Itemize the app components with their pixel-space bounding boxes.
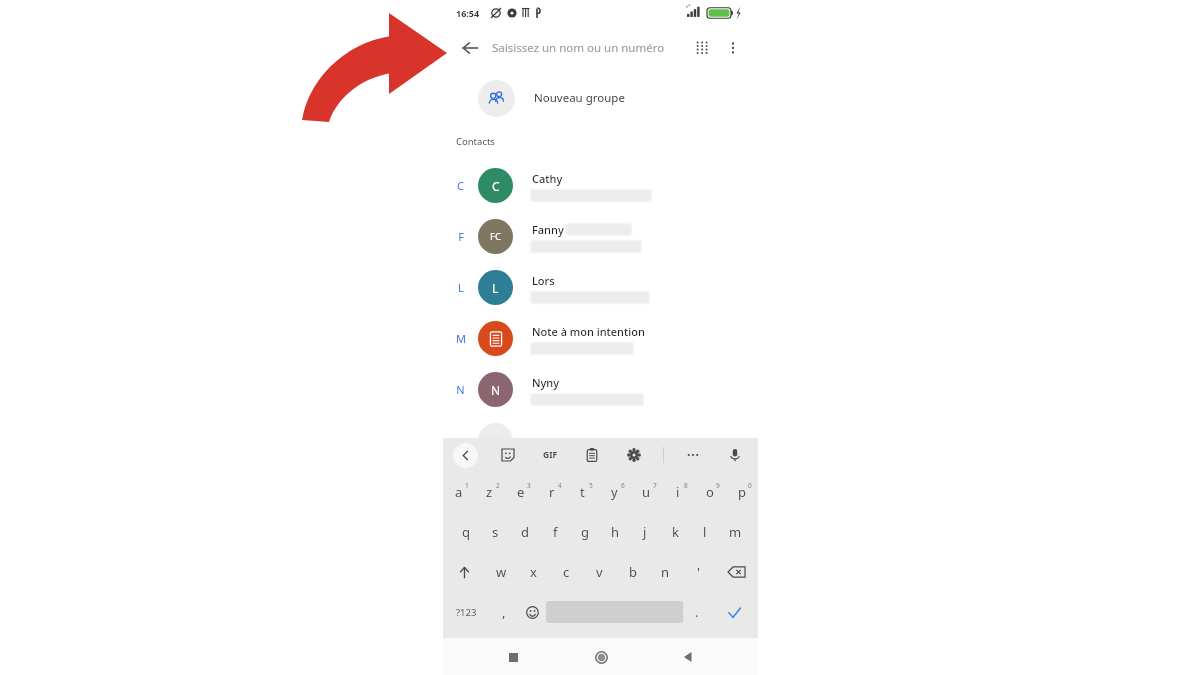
button[interactable]: w bbox=[485, 552, 517, 592]
staticText: e bbox=[517, 483, 525, 501]
button[interactable]: k bbox=[660, 512, 690, 552]
button[interactable]: e bbox=[505, 472, 536, 512]
staticText: f bbox=[553, 523, 558, 541]
button[interactable]: d bbox=[510, 512, 540, 552]
button[interactable]: x bbox=[517, 552, 550, 592]
button[interactable]: Supprimer bbox=[715, 552, 758, 592]
staticText: . bbox=[695, 603, 699, 621]
button[interactable]: F bbox=[443, 211, 758, 262]
button[interactable]: q bbox=[451, 512, 480, 552]
button[interactable]: j bbox=[630, 512, 660, 552]
button[interactable]: i bbox=[662, 472, 694, 512]
button[interactable]: p bbox=[726, 472, 758, 512]
staticText: Note à mon intention bbox=[532, 324, 645, 339]
button[interactable]: Plus bbox=[680, 442, 706, 468]
button[interactable]: Plus d'options bbox=[718, 33, 748, 63]
staticText: ' bbox=[697, 563, 700, 581]
button[interactable]: Saisissez un nom ou un numéro bbox=[492, 26, 688, 70]
staticText: h bbox=[611, 523, 620, 541]
button[interactable]: Retour bbox=[453, 31, 487, 65]
button[interactable]: l bbox=[690, 512, 720, 552]
staticText: d bbox=[521, 523, 529, 541]
button[interactable]: u bbox=[630, 472, 662, 512]
staticText: m bbox=[729, 523, 742, 541]
button[interactable]: t bbox=[567, 472, 598, 512]
staticText: g bbox=[581, 523, 589, 541]
staticText: y bbox=[611, 483, 618, 501]
button[interactable]: s bbox=[480, 512, 510, 552]
button[interactable]: Applications récentes bbox=[496, 640, 530, 674]
button[interactable]: Valider bbox=[711, 592, 758, 632]
staticText: z bbox=[486, 483, 493, 501]
button[interactable]: Paramètres bbox=[621, 442, 647, 468]
button[interactable]: h bbox=[600, 512, 630, 552]
staticText: 7 bbox=[653, 481, 657, 490]
button[interactable]: N bbox=[443, 364, 758, 415]
staticText: 9 bbox=[716, 481, 720, 490]
staticText: r bbox=[549, 483, 555, 501]
staticText: 3 bbox=[527, 481, 531, 490]
staticText: l bbox=[703, 523, 707, 541]
staticText: Saisissez un nom ou un numéro bbox=[492, 40, 665, 56]
staticText: s bbox=[492, 523, 499, 541]
staticText: u bbox=[642, 483, 651, 501]
staticText: a bbox=[455, 483, 463, 501]
button[interactable]: f bbox=[540, 512, 570, 552]
button[interactable]: Autocollants bbox=[495, 442, 521, 468]
button[interactable]: Retour bbox=[671, 640, 705, 674]
button[interactable]: Clavier numérique bbox=[688, 33, 718, 63]
staticText: p bbox=[738, 483, 746, 501]
button[interactable]: Saisie vocale bbox=[722, 442, 748, 468]
staticText: o bbox=[706, 483, 714, 501]
staticText: M bbox=[456, 331, 466, 346]
staticText: ?123 bbox=[456, 606, 477, 619]
button[interactable]: . bbox=[683, 592, 711, 632]
button[interactable]: , bbox=[490, 592, 518, 632]
button[interactable]: n bbox=[649, 552, 682, 592]
button[interactable]: Emoji bbox=[518, 592, 546, 632]
staticText: Contacts bbox=[456, 135, 495, 148]
staticText: j bbox=[643, 523, 647, 541]
button[interactable]: Majuscule bbox=[443, 552, 485, 592]
button[interactable]: Presse-papiers bbox=[579, 442, 605, 468]
staticText: 6 bbox=[621, 481, 625, 490]
staticText: 5 bbox=[589, 481, 593, 490]
staticText: L bbox=[492, 280, 499, 296]
staticText: k bbox=[672, 523, 679, 541]
button[interactable]: Accueil bbox=[584, 640, 618, 674]
button[interactable]: ?123 bbox=[443, 592, 490, 632]
staticText: C bbox=[492, 178, 500, 194]
staticText: F bbox=[458, 229, 464, 244]
staticText: x bbox=[530, 563, 537, 581]
staticText: Fanny bbox=[532, 222, 564, 237]
button[interactable]: C bbox=[443, 160, 758, 211]
button[interactable]: ' bbox=[682, 552, 715, 592]
staticText: Nouveau groupe bbox=[534, 90, 625, 106]
staticText: Nyny bbox=[532, 375, 560, 390]
button[interactable]: c bbox=[550, 552, 583, 592]
staticText: c bbox=[563, 563, 570, 581]
button[interactable]: v bbox=[583, 552, 616, 592]
staticText: i bbox=[676, 483, 680, 501]
button[interactable]: GIF bbox=[537, 442, 563, 468]
button[interactable]: a bbox=[443, 472, 474, 512]
button[interactable]: Nouveau groupe bbox=[443, 74, 758, 122]
button[interactable]: m bbox=[720, 512, 750, 552]
button[interactable]: r bbox=[536, 472, 567, 512]
staticText: q bbox=[462, 523, 470, 541]
staticText: FC bbox=[490, 230, 501, 243]
button[interactable]: z bbox=[474, 472, 505, 512]
button[interactable]: g bbox=[570, 512, 600, 552]
button[interactable]: y bbox=[598, 472, 630, 512]
staticText: N bbox=[491, 382, 501, 398]
button[interactable]: o bbox=[694, 472, 726, 512]
button[interactable]: M bbox=[443, 313, 758, 364]
button[interactable]: b bbox=[616, 552, 649, 592]
staticText: w bbox=[496, 563, 507, 581]
button[interactable]: L bbox=[443, 262, 758, 313]
staticText: GIF bbox=[543, 449, 558, 461]
staticText: 8 bbox=[684, 481, 688, 490]
button[interactable]: Fermer la barre d'outils bbox=[453, 443, 478, 468]
staticText: 2 bbox=[496, 481, 500, 490]
